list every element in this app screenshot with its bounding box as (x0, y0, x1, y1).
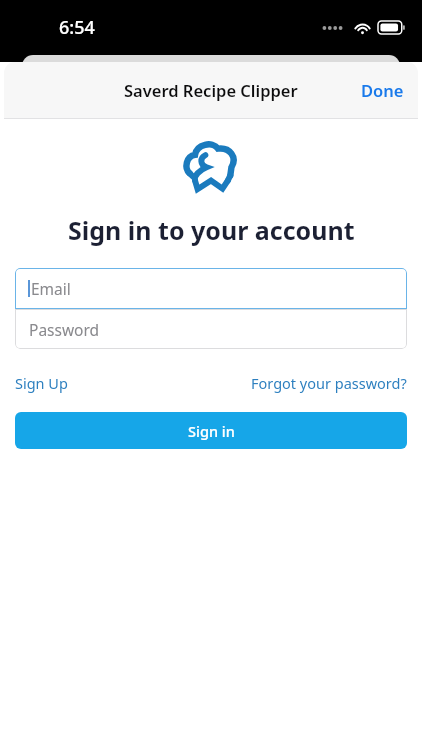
staticText: Email (31, 278, 71, 299)
staticText: Sign Up (15, 373, 68, 393)
other: Saverd logo (183, 139, 239, 191)
button[interactable]: Sign in (15, 412, 407, 449)
staticText: Sign in to your account (68, 213, 355, 247)
button[interactable]: Sign Up (15, 369, 68, 397)
button[interactable]: Forgot your password? (251, 369, 407, 397)
staticText: Done (361, 79, 404, 101)
staticText: Sign in (188, 421, 235, 441)
staticText: Password (29, 319, 100, 340)
staticText: Saverd Recipe Clipper (124, 79, 298, 101)
button[interactable]: Password (15, 309, 407, 349)
button[interactable]: Done (347, 69, 418, 111)
button[interactable]: Email (15, 268, 407, 309)
staticText: 6:54 (59, 15, 95, 40)
staticText: Forgot your password? (251, 373, 407, 393)
